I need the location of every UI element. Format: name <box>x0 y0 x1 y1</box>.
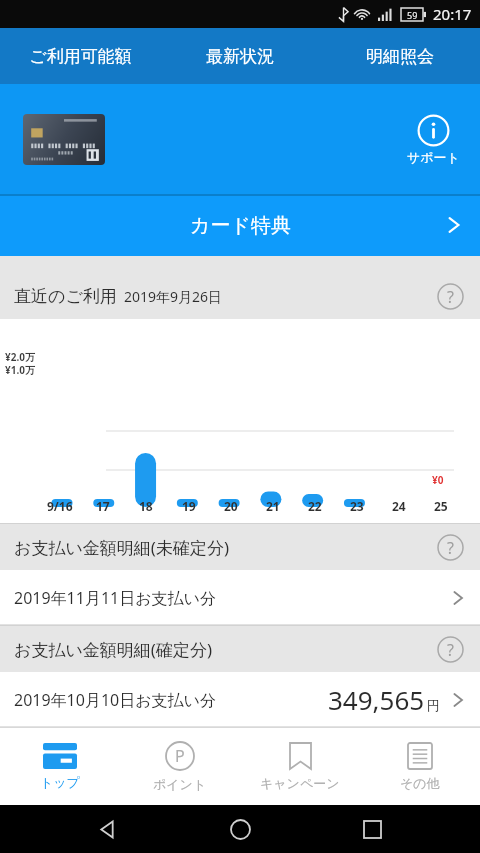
button[interactable]: 直近のご利用 <box>0 273 480 319</box>
button[interactable]: 2019年10月10日お支払い分 <box>0 672 480 727</box>
staticText: 24 <box>392 498 406 514</box>
staticText: 17 <box>96 498 110 514</box>
staticText: 2019年11月11日お支払い分 <box>14 587 216 609</box>
staticText: キャンペーン <box>260 775 340 791</box>
staticText: 2019年9月26日 <box>124 287 223 306</box>
staticText: 最新状況 <box>206 46 274 67</box>
staticText: 18 <box>139 498 153 514</box>
button[interactable]: その他 <box>360 727 480 805</box>
button[interactable]: ご利用可能額 <box>0 28 160 84</box>
button[interactable]: 履歴 <box>348 805 396 853</box>
staticText: 直近のご利用 <box>14 286 117 307</box>
staticText: ¥1.0万 <box>5 363 35 377</box>
button[interactable]: お支払い金額明細(確定分) <box>0 626 480 672</box>
staticText: ¥0 <box>432 473 444 487</box>
staticText: ご利用可能額 <box>29 46 132 67</box>
button[interactable]: 明細照会 <box>320 28 480 84</box>
staticText: 349,565 <box>328 682 425 717</box>
staticText: ¥2.0万 <box>5 350 35 364</box>
staticText: お支払い金額明細(未確定分) <box>14 536 229 559</box>
button[interactable]: 最新状況 <box>160 28 320 84</box>
staticText: 59 <box>407 9 418 21</box>
staticText: 20 <box>224 498 238 514</box>
staticText: お支払い金額明細(確定分) <box>14 638 212 661</box>
staticText: 23 <box>350 498 364 514</box>
staticText: 明細照会 <box>366 46 434 67</box>
staticText: ポイント <box>153 776 207 792</box>
staticText: カード特典 <box>190 213 291 238</box>
button[interactable]: P <box>120 727 240 805</box>
staticText: 22 <box>308 498 322 514</box>
button[interactable]: サポート <box>407 114 460 165</box>
staticText: トップ <box>40 774 80 790</box>
staticText: 円 <box>427 697 440 713</box>
staticText: P <box>175 745 185 767</box>
staticText: ? <box>447 286 454 308</box>
button[interactable]: お支払い金額明細(未確定分) <box>0 524 480 570</box>
other: ヘルプ <box>437 636 464 663</box>
staticText: ? <box>447 639 454 661</box>
staticText: ? <box>447 537 454 559</box>
staticText: 9/16 <box>47 498 73 514</box>
staticText: 25 <box>434 498 448 514</box>
button[interactable]: カード特典 <box>0 194 480 256</box>
button[interactable]: 2019年11月11日お支払い分 <box>0 570 480 625</box>
staticText: 20:17 <box>433 4 472 24</box>
button[interactable]: ホーム <box>216 805 264 853</box>
staticText: その他 <box>400 775 440 791</box>
staticText: 19 <box>182 498 196 514</box>
other: ヘルプ <box>437 283 464 310</box>
button[interactable]: カード <box>23 114 105 165</box>
button[interactable]: 戻る <box>84 805 132 853</box>
button[interactable]: キャンペーン <box>240 727 360 805</box>
button[interactable]: トップ <box>0 727 120 805</box>
staticText: 21 <box>266 498 280 514</box>
staticText: 2019年10月10日お支払い分 <box>14 689 216 711</box>
staticText: サポート <box>407 149 460 165</box>
other: ヘルプ <box>437 534 464 561</box>
